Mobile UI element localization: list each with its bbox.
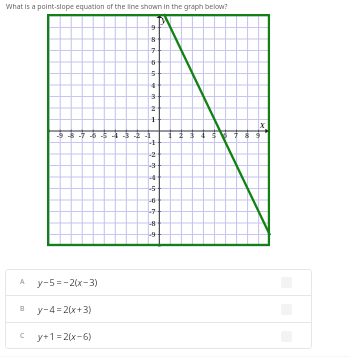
staticText: What is a point-slope equation of the li… xyxy=(6,2,228,11)
staticText: y + 1 = 2(x − 6) xyxy=(38,330,92,343)
staticText: A xyxy=(20,277,25,287)
staticText: y − 4 = 2(x + 3) xyxy=(38,303,92,316)
staticText: C xyxy=(20,331,25,341)
button[interactable]: C xyxy=(5,323,312,349)
staticText: B xyxy=(20,304,25,314)
button[interactable]: A xyxy=(5,269,312,295)
staticText: y − 5 = − 2(x − 3) xyxy=(38,276,98,289)
button[interactable]: B xyxy=(5,296,312,322)
